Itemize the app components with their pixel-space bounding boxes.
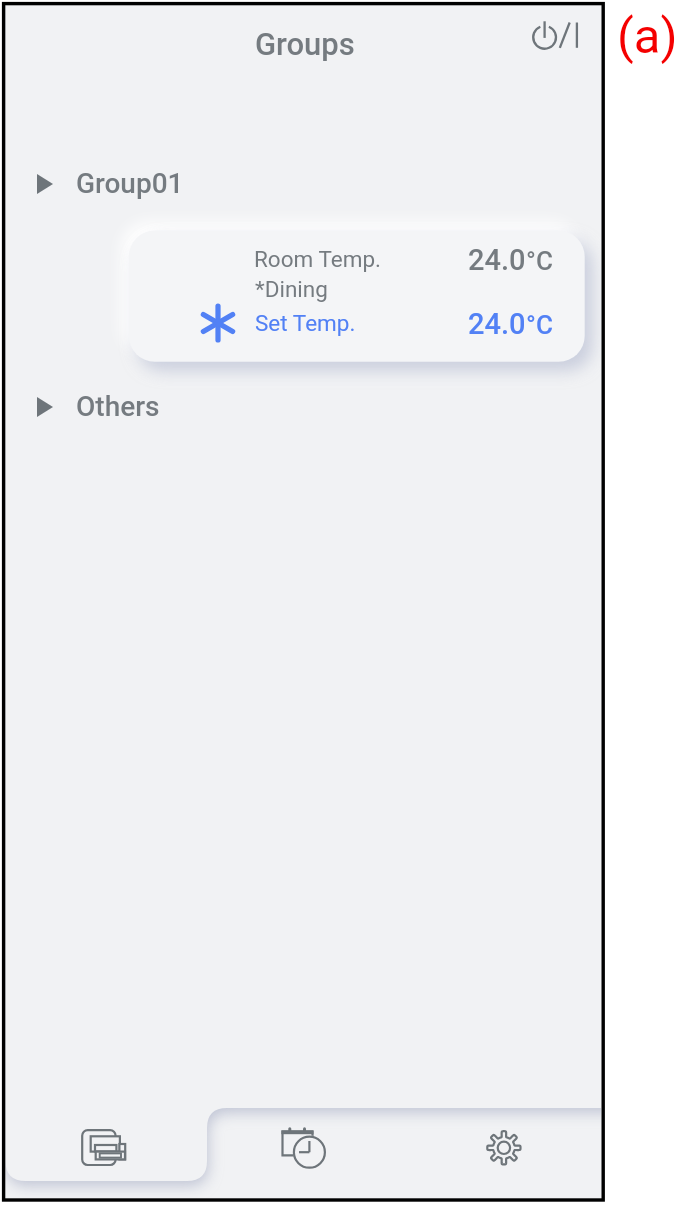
staticText: Others: [76, 390, 160, 423]
staticText: Groups: [255, 26, 355, 62]
button[interactable]: Schedule: [209, 1098, 404, 1195]
staticText: Group01: [76, 167, 184, 200]
staticText: 24.0: [468, 243, 526, 277]
button[interactable]: Power on/off: [523, 13, 595, 69]
staticText: °C: [526, 310, 553, 340]
staticText: (a): [617, 8, 678, 65]
staticText: *Dining: [255, 276, 328, 302]
staticText: 24.0: [468, 307, 526, 341]
staticText: °C: [526, 246, 553, 276]
button[interactable]: Group01: [37, 159, 237, 209]
button[interactable]: Settings: [404, 1098, 601, 1195]
button[interactable]: Groups: [7, 1098, 207, 1195]
button[interactable]: Room Temp.: [129, 231, 585, 362]
staticText: Set Temp.: [255, 310, 356, 336]
staticText: Room Temp.: [254, 246, 381, 272]
button[interactable]: Others: [37, 382, 237, 432]
